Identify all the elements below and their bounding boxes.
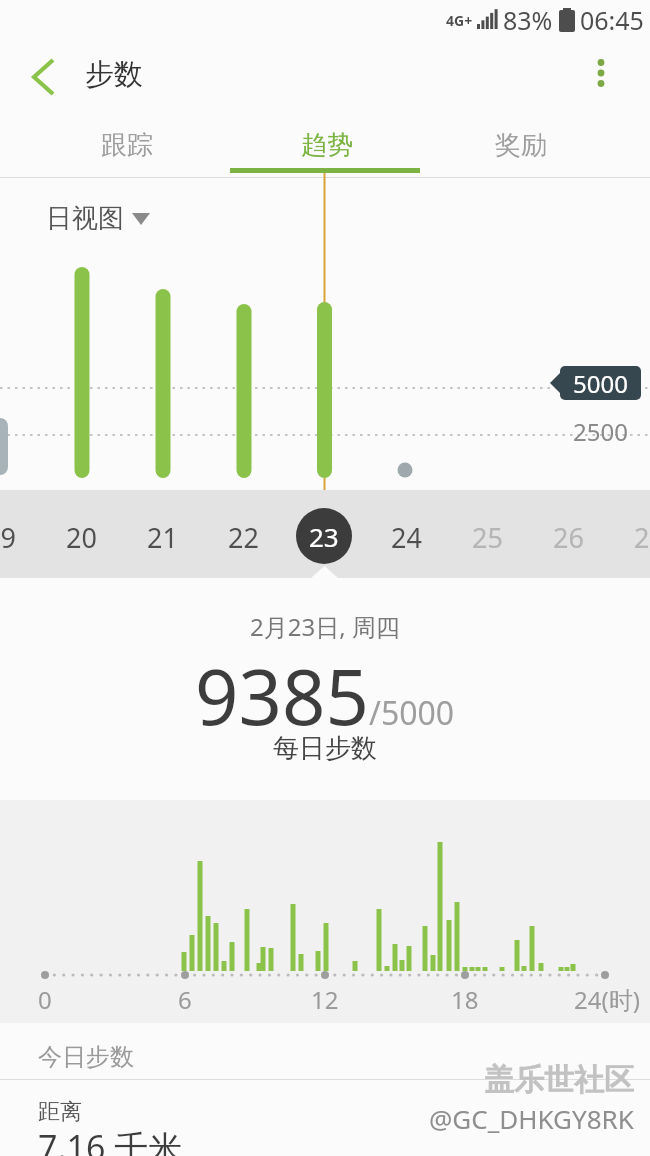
button[interactable]: 20 [41, 493, 121, 581]
staticText: 25 [472, 519, 503, 556]
button[interactable]: 距离 [0, 1086, 650, 1156]
button[interactable]: 跟踪 [32, 116, 222, 174]
button[interactable]: 27 [609, 493, 650, 581]
staticText: 0 [38, 983, 52, 1016]
staticText: @GC_DHKGY8RK [429, 1101, 634, 1136]
staticText: 日视图 [46, 202, 124, 235]
staticText: 今日步数 [38, 1042, 134, 1072]
button[interactable]: 21 [122, 493, 202, 581]
button[interactable]: 22 [203, 493, 283, 581]
staticText: 21 [147, 519, 178, 556]
staticText: 奖励 [495, 129, 547, 162]
button[interactable]: 19 [0, 493, 40, 581]
staticText: 24(时) [574, 983, 640, 1016]
button[interactable]: 25 [447, 493, 527, 581]
staticText: /5000 [369, 691, 455, 735]
staticText: 7.16 千米 [38, 1124, 183, 1156]
staticText: 5000 [573, 367, 628, 400]
staticText: 12 [311, 983, 339, 1016]
staticText: 趋势 [301, 129, 353, 162]
staticText: 距离 [38, 1098, 82, 1126]
staticText: 27 [634, 519, 650, 556]
button[interactable]: 趋势 [232, 116, 422, 174]
button[interactable] [20, 56, 64, 98]
staticText: 26 [553, 519, 584, 556]
button[interactable]: 23 [296, 508, 352, 564]
staticText: 23 [309, 519, 339, 554]
staticText: 18 [451, 983, 479, 1016]
button[interactable] [578, 50, 624, 96]
staticText: 06:45 [580, 3, 644, 37]
staticText: 跟踪 [101, 129, 153, 162]
staticText: 20 [66, 519, 97, 556]
staticText: 2月23日, 周四 [250, 610, 400, 643]
staticText: 盖乐世社区 [484, 1061, 634, 1099]
button[interactable]: 26 [528, 493, 608, 581]
staticText: 每日步数 [273, 732, 377, 765]
staticText: 2500 [573, 415, 628, 448]
staticText: 4G+ [446, 11, 473, 30]
button[interactable]: 奖励 [426, 116, 616, 174]
staticText: 24 [391, 519, 422, 556]
button[interactable]: 24 [366, 493, 446, 581]
staticText: 22 [228, 519, 259, 556]
staticText: 19 [0, 519, 16, 556]
staticText: 步数 [85, 56, 143, 93]
staticText: 83% [503, 3, 553, 37]
staticText: 9385 [195, 644, 369, 748]
staticText: 6 [178, 983, 192, 1016]
button[interactable]: 日视图 [46, 198, 176, 238]
